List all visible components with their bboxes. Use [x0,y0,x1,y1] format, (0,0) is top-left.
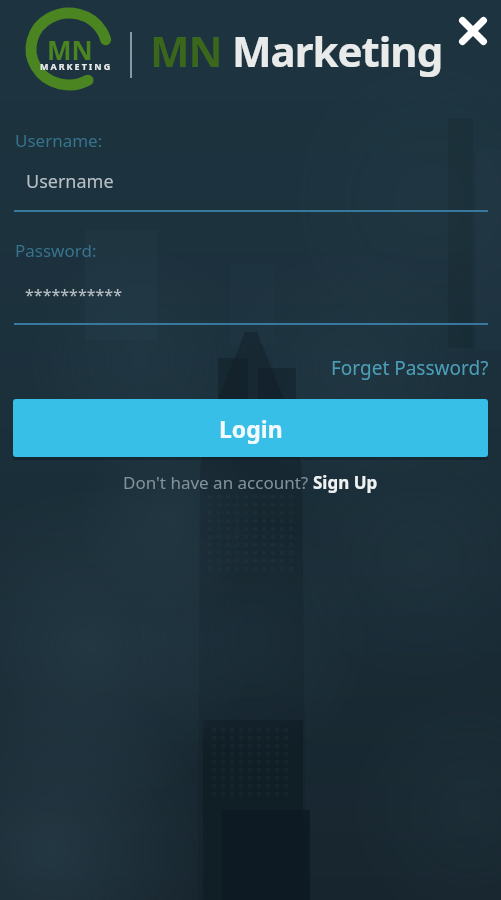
staticText: *********** [25,284,122,306]
staticText: Sign Up [313,471,378,494]
staticText: MARKETING [40,60,113,72]
staticText: Don't have an account? [123,471,313,494]
staticText: Forget Password? [331,355,489,381]
staticText: Username [26,169,114,194]
staticText: Marketing [222,22,443,79]
staticText: MN [150,22,222,79]
staticText: Login [219,413,283,444]
staticText: Username: [15,129,103,152]
staticText: Password: [15,239,97,262]
staticText: MN [47,32,93,67]
